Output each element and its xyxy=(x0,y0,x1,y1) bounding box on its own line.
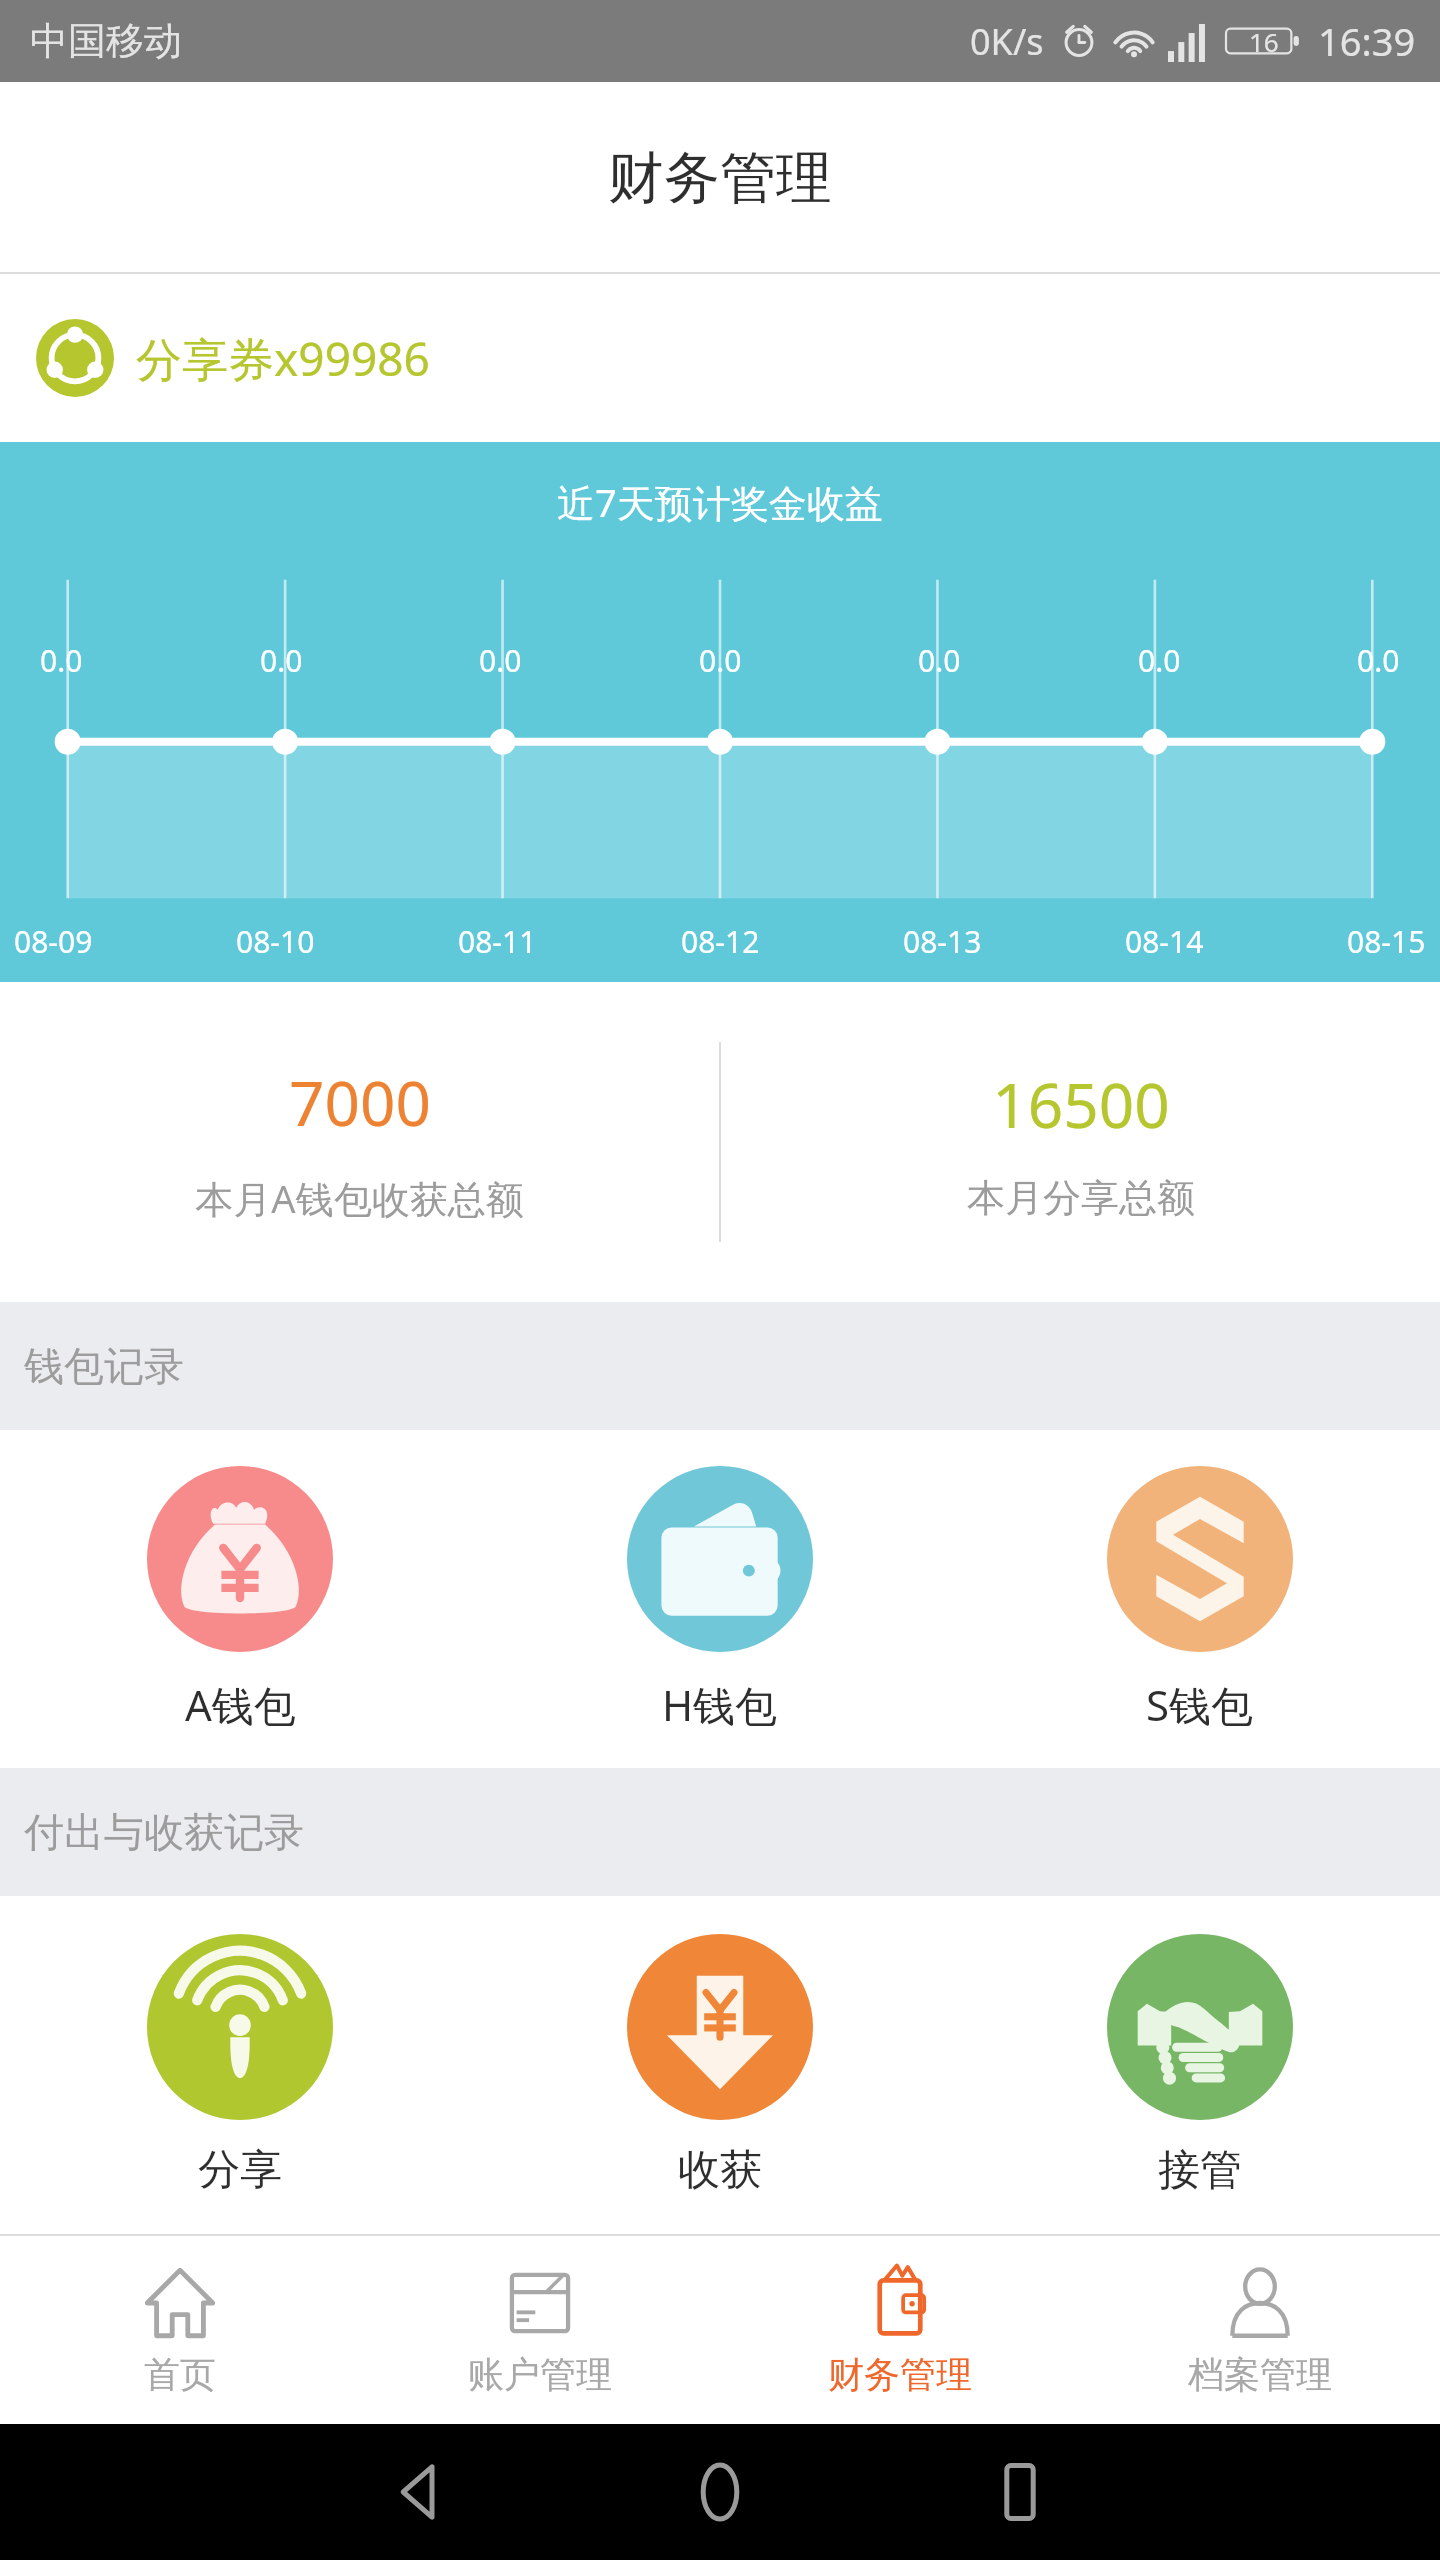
staticText: 08-14 xyxy=(1125,921,1204,962)
staticText: 7000 xyxy=(289,1060,431,1144)
button[interactable]: 分享券x99986 xyxy=(0,274,1440,442)
staticText: 分享 xyxy=(198,2144,282,2197)
other: Back xyxy=(390,2462,450,2522)
staticText: 分享券x99986 xyxy=(136,327,430,390)
button[interactable]: H钱包 xyxy=(480,1448,960,1751)
staticText: 首页 xyxy=(144,2352,216,2397)
other: Recents xyxy=(990,2462,1050,2522)
button[interactable]: 分享 xyxy=(0,1916,480,2215)
staticText: 财务管理 xyxy=(828,2352,972,2397)
button[interactable]: 账户管理 xyxy=(360,2236,720,2424)
staticText: 付出与收获记录 xyxy=(24,1807,304,1857)
staticText: 账户管理 xyxy=(468,2352,612,2397)
staticText: 0.0 xyxy=(918,640,961,681)
staticText: 08-09 xyxy=(14,921,93,962)
staticText: 档案管理 xyxy=(1188,2352,1332,2397)
staticText: 16 xyxy=(1249,24,1279,59)
staticText: 钱包记录 xyxy=(24,1341,184,1391)
other: Home xyxy=(690,2462,750,2522)
staticText: 接管 xyxy=(1158,2144,1242,2197)
button[interactable]: 财务管理 xyxy=(720,2236,1080,2424)
button[interactable]: 收获 xyxy=(480,1916,960,2215)
staticText: H钱包 xyxy=(662,1676,778,1733)
staticText: 0.0 xyxy=(699,640,742,681)
staticText: S钱包 xyxy=(1146,1676,1254,1733)
staticText: 本月A钱包收获总额 xyxy=(195,1172,524,1224)
staticText: A钱包 xyxy=(185,1676,296,1733)
button[interactable]: A钱包 xyxy=(0,1448,480,1751)
staticText: 16:39 xyxy=(1318,15,1416,67)
staticText: 中国移动 xyxy=(30,17,182,65)
button[interactable]: 档案管理 xyxy=(1080,2236,1440,2424)
staticText: 08-13 xyxy=(903,921,982,962)
staticText: 0.0 xyxy=(479,640,522,681)
staticText: 0.0 xyxy=(1138,640,1181,681)
staticText: 08-12 xyxy=(681,921,760,962)
staticText: 0.0 xyxy=(40,640,83,681)
staticText: 08-15 xyxy=(1347,921,1426,962)
button[interactable]: 接管 xyxy=(960,1916,1440,2215)
staticText: 收获 xyxy=(678,2144,762,2197)
staticText: 08-10 xyxy=(236,921,315,962)
staticText: 16500 xyxy=(992,1062,1170,1146)
staticText: 0.0 xyxy=(1357,640,1400,681)
staticText: 财务管理 xyxy=(608,143,832,214)
button[interactable]: 7000 xyxy=(0,1040,719,1244)
button[interactable]: S钱包 xyxy=(960,1448,1440,1751)
staticText: 08-11 xyxy=(458,921,537,962)
staticText: 本月分享总额 xyxy=(967,1174,1195,1222)
staticText: 近7天预计奖金收益 xyxy=(557,476,883,528)
button[interactable]: 首页 xyxy=(0,2236,360,2424)
staticText: 0.0 xyxy=(260,640,303,681)
button[interactable]: 16500 xyxy=(721,1042,1440,1242)
staticText: 0K/s xyxy=(970,17,1044,66)
